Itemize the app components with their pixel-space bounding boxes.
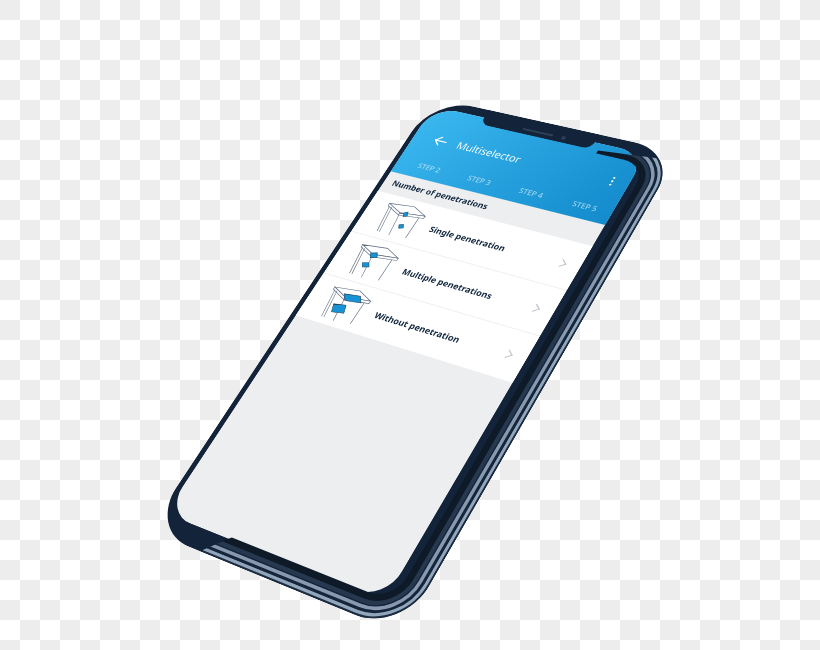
button[interactable]: More options: [595, 169, 629, 193]
button[interactable]: STEP 4: [500, 177, 563, 208]
staticText: STEP 2: [416, 161, 443, 174]
staticText: Without penetration: [372, 309, 463, 345]
staticText: Single penetration: [427, 223, 509, 254]
button[interactable]: Single penetration: [351, 191, 593, 290]
button[interactable]: STEP 3: [449, 165, 510, 195]
staticText: Multiple penetrations: [400, 266, 495, 302]
button[interactable]: Multiple penetrations: [324, 231, 567, 336]
button[interactable]: STEP 2: [399, 153, 460, 182]
staticText: STEP 5: [570, 198, 600, 213]
staticText: STEP 4: [517, 185, 546, 200]
button[interactable]: Without penetration: [296, 273, 540, 383]
staticText: STEP 3: [466, 173, 493, 187]
staticText: Multiselector: [453, 139, 525, 166]
button[interactable]: STEP 5: [553, 190, 618, 221]
staticText: Number of penetrations: [390, 178, 491, 212]
button[interactable]: Back: [425, 130, 456, 152]
